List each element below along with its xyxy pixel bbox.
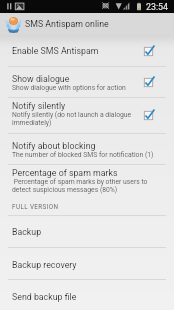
staticText: Notify silently	[12, 101, 66, 111]
button[interactable]: Backup	[0, 215, 174, 247]
staticText: Notify about blocking	[12, 141, 96, 151]
button[interactable]: Toggle Show dialogue	[142, 76, 155, 89]
staticText: Send backup file	[12, 292, 77, 302]
staticText: The number of blocked SMS for notificati…	[12, 151, 154, 159]
button[interactable]: Toggle Notify silently	[142, 109, 155, 122]
button[interactable]: Toggle Enable SMS Antispam	[142, 45, 155, 58]
button[interactable]: Notify about blocking	[0, 134, 174, 165]
staticText: SMS Antispam online	[25, 19, 109, 29]
button[interactable]: Notify silently	[0, 97, 174, 134]
staticText: Percentage of spam marks by other users …	[12, 178, 152, 194]
staticText: 23:54	[146, 2, 168, 12]
staticText: Show dialogue	[12, 74, 70, 84]
staticText: Percentage of spam marks	[12, 168, 118, 178]
button[interactable]: Show dialogue	[0, 67, 174, 98]
staticText: Backup	[12, 227, 42, 237]
button[interactable]: Enable SMS Antispam	[0, 35, 174, 67]
staticText: Show dialogue with options for action	[12, 84, 126, 92]
button[interactable]: Percentage of spam marks	[0, 165, 174, 196]
button[interactable]: Send backup file	[0, 280, 174, 310]
staticText: Backup recovery	[12, 260, 77, 270]
staticText: FULL VERSION	[12, 203, 59, 211]
staticText: Enable SMS Antispam	[12, 46, 99, 56]
button[interactable]: Backup recovery	[0, 248, 174, 280]
staticText: Notify silently (do not launch a dialogu…	[12, 111, 132, 127]
